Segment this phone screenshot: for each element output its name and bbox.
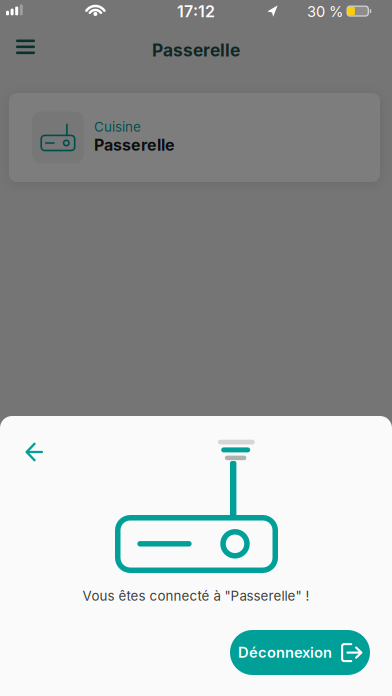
button[interactable]: Menu [16, 39, 35, 54]
staticText: Cuisine [94, 119, 141, 135]
button[interactable]: Déconnexion [230, 630, 370, 675]
staticText: Passerelle [94, 135, 175, 154]
button[interactable]: Cuisine [9, 93, 380, 182]
staticText: Passerelle [152, 40, 240, 60]
staticText: Vous êtes connecté à "Passerelle" ! [82, 588, 309, 604]
staticText: 17:12 [177, 2, 215, 21]
staticText: Déconnexion [238, 644, 332, 661]
staticText: 30 % [307, 3, 343, 20]
button[interactable]: Back [15, 432, 53, 471]
